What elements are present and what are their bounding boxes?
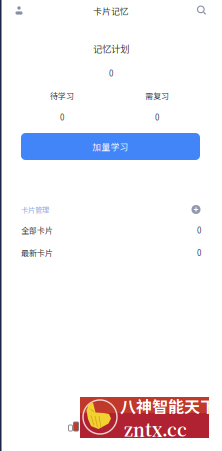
staticText: 全部卡片 [21, 224, 53, 236]
staticText: 卡片管理 [21, 204, 49, 215]
staticText: zntx.cc [124, 416, 187, 441]
staticText: 0 [155, 111, 159, 123]
button[interactable]: 全部卡片 [0, 219, 222, 240]
staticText: 0 [197, 247, 201, 258]
staticText: 0 [60, 111, 64, 123]
button[interactable]: Advertisement [80, 397, 209, 438]
staticText: 卡片记忆 [93, 4, 129, 17]
staticText: 需复习 [145, 90, 169, 101]
staticText: 待学习 [50, 90, 74, 101]
staticText: 最新卡片 [21, 247, 53, 258]
button[interactable]: Profile [8, 1, 30, 21]
staticText: 八神智能天下 [120, 394, 216, 418]
button[interactable]: 加量学习 [21, 133, 200, 160]
staticText: 0 [197, 224, 201, 236]
button[interactable]: Add cards [188, 202, 204, 216]
staticText: 加量学习 [92, 140, 128, 153]
button[interactable]: Search [191, 1, 213, 21]
button[interactable]: 最新卡片 [0, 242, 222, 263]
staticText: 记忆计划 [93, 42, 129, 55]
staticText: 0 [109, 67, 113, 79]
